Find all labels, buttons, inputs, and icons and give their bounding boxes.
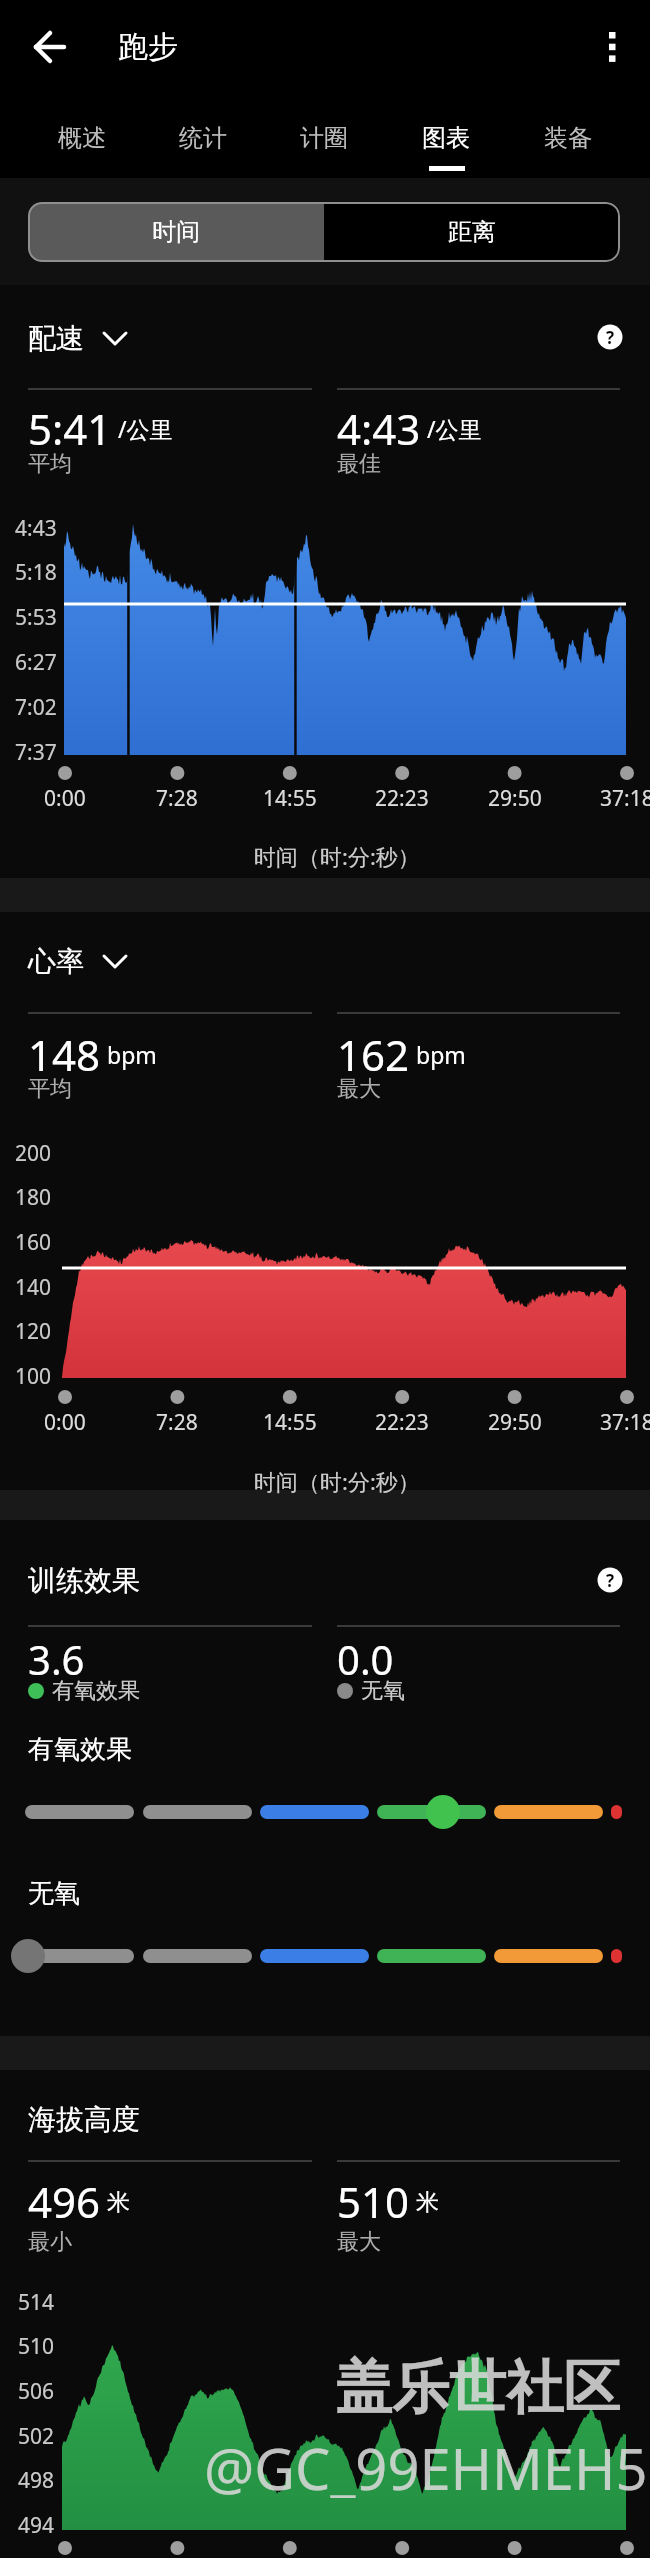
staticText: 494 xyxy=(18,2511,55,2539)
staticText: 5:53 xyxy=(15,603,57,631)
staticText: 无氧 xyxy=(28,1877,80,1910)
staticText: 有氧效果 xyxy=(28,1733,132,1766)
staticText: 100 xyxy=(15,1362,52,1390)
staticText: 502 xyxy=(18,2422,55,2450)
staticText: 时间（时:分:秒） xyxy=(254,841,420,871)
staticText: 最佳 xyxy=(337,450,381,478)
staticText: 跑步 xyxy=(118,28,178,66)
staticText: 0:00 xyxy=(44,1408,86,1436)
staticText: 配速 xyxy=(28,321,84,356)
staticText: 0.0 xyxy=(337,1632,394,1680)
button[interactable]: 配速 xyxy=(28,318,98,358)
staticText: 148 xyxy=(28,1026,101,1076)
staticText: 180 xyxy=(15,1183,52,1211)
staticText: 22:23 xyxy=(375,1408,429,1436)
staticText: 平均 xyxy=(28,1075,72,1103)
button[interactable]: 计圈 xyxy=(263,108,385,168)
staticText: 160 xyxy=(15,1228,52,1256)
staticText: 29:50 xyxy=(488,784,542,812)
staticText: 5:41 xyxy=(28,400,112,450)
staticText: 3.6 xyxy=(28,1632,85,1680)
button[interactable]: 图表 xyxy=(385,108,507,168)
staticText: 无氧 xyxy=(361,1677,405,1705)
staticText: 米 xyxy=(416,2188,439,2217)
button[interactable]: 心率 xyxy=(28,941,98,981)
staticText: 14:55 xyxy=(263,784,317,812)
staticText: 162 xyxy=(337,1026,410,1076)
staticText: 装备 xyxy=(544,123,592,153)
staticText: 6:27 xyxy=(15,648,57,676)
staticText: 29:50 xyxy=(488,1408,542,1436)
staticText: 时间 xyxy=(152,217,200,247)
staticText: 22:23 xyxy=(375,784,429,812)
staticText: ? xyxy=(606,1569,615,1592)
button[interactable]: 概述 xyxy=(21,108,142,168)
staticText: 平均 xyxy=(28,450,72,478)
staticText: /公里 xyxy=(427,413,482,444)
staticText: 37:18 xyxy=(600,784,650,812)
staticText: 120 xyxy=(15,1317,52,1345)
staticText: 米 xyxy=(107,2188,130,2217)
staticText: 200 xyxy=(15,1139,52,1167)
staticText: 距离 xyxy=(448,217,496,247)
button[interactable]: 装备 xyxy=(507,108,629,168)
staticText: 510 xyxy=(18,2332,55,2360)
staticText: 7:02 xyxy=(15,693,57,721)
staticText: 海拔高度 xyxy=(28,2102,140,2137)
staticText: 496 xyxy=(28,2173,101,2223)
staticText: 7:28 xyxy=(156,1408,198,1436)
staticText: 统计 xyxy=(179,123,227,153)
staticText: 514 xyxy=(18,2288,55,2316)
staticText: 最大 xyxy=(337,2228,381,2256)
staticText: 140 xyxy=(15,1273,52,1301)
staticText: 心率 xyxy=(28,944,84,979)
staticText: 7:28 xyxy=(156,784,198,812)
staticText: @GC_99EHMEH5 xyxy=(204,2430,648,2498)
staticText: 盖乐世社区 xyxy=(335,2352,620,2416)
button[interactable] xyxy=(588,18,636,76)
button[interactable] xyxy=(20,18,78,76)
button[interactable]: 距离 xyxy=(324,202,620,262)
staticText: /公里 xyxy=(118,413,173,444)
staticText: bpm xyxy=(107,1039,157,1070)
staticText: 14:55 xyxy=(263,1408,317,1436)
staticText: 7:37 xyxy=(15,738,57,766)
button[interactable]: 统计 xyxy=(142,108,263,168)
staticText: 5:18 xyxy=(15,558,57,586)
staticText: 最大 xyxy=(337,1075,381,1103)
staticText: 概述 xyxy=(58,123,106,153)
staticText: 37:18 xyxy=(600,1408,650,1436)
staticText: ? xyxy=(606,326,615,349)
button[interactable]: 时间 xyxy=(28,202,324,262)
staticText: 510 xyxy=(337,2173,410,2223)
staticText: 有氧效果 xyxy=(52,1677,140,1705)
staticText: 时间（时:分:秒） xyxy=(254,1466,420,1496)
staticText: 498 xyxy=(18,2466,55,2494)
staticText: 图表 xyxy=(422,123,470,153)
staticText: 506 xyxy=(18,2377,55,2405)
staticText: 0:00 xyxy=(44,784,86,812)
staticText: 4:43 xyxy=(337,400,421,450)
staticText: 最小 xyxy=(28,2228,72,2256)
staticText: 4:43 xyxy=(15,514,57,542)
staticText: 训练效果 xyxy=(28,1563,140,1598)
staticText: 计圈 xyxy=(300,123,348,153)
staticText: bpm xyxy=(416,1039,466,1070)
